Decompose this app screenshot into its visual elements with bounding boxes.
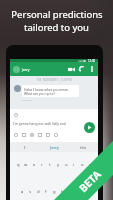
button[interactable]: Call (77, 64, 87, 74)
staticText: l (85, 189, 87, 195)
button[interactable]: i (70, 152, 78, 178)
button[interactable]: Send (84, 122, 95, 133)
staticText: I'm gonna hang out with Sally and (13, 121, 84, 125)
button[interactable]: u (62, 152, 70, 178)
button[interactable]: a (18, 178, 26, 200)
button[interactable]: Files (44, 131, 52, 139)
button[interactable]: Camera (28, 131, 36, 139)
button[interactable]: w (22, 152, 30, 178)
staticText: y (57, 162, 60, 168)
staticText: the (80, 145, 87, 150)
button[interactable]: More options (88, 65, 96, 73)
staticText: f (45, 189, 47, 195)
button[interactable]: More (52, 131, 60, 139)
staticText: Jerry (50, 145, 59, 150)
button[interactable]: f (42, 178, 50, 200)
staticText: Haha I know what you mean. (24, 87, 69, 91)
staticText: o (81, 162, 84, 168)
staticText: u (65, 162, 68, 168)
button[interactable]: the (69, 142, 98, 152)
button[interactable]: I (10, 142, 40, 152)
staticText: e (33, 162, 36, 168)
staticText: d (37, 189, 40, 195)
other: Send (87, 125, 92, 130)
staticText: TUE, NOVEMBER 1, 12:30 PM (10, 78, 98, 82)
staticText: 12:30 (88, 59, 96, 62)
staticText: tailored to you (24, 21, 89, 34)
button[interactable]: e (30, 152, 38, 178)
staticText: q (17, 162, 20, 168)
button[interactable]: p (86, 152, 94, 178)
staticText: t (49, 162, 51, 168)
button[interactable]: s (26, 178, 34, 200)
staticText: i (73, 162, 75, 168)
staticText: Jerry (22, 67, 30, 72)
button[interactable]: k (74, 178, 82, 200)
button[interactable]: Attach (12, 111, 19, 118)
staticText: s (29, 189, 32, 195)
button[interactable]: g (50, 178, 58, 200)
staticText: 12:30 PM (22, 98, 33, 101)
staticText: What are you up to? (24, 91, 55, 95)
button[interactable]: h (58, 178, 66, 200)
staticText: BETA (76, 167, 104, 195)
button[interactable]: Jerry (40, 142, 69, 152)
staticText: r (41, 162, 43, 168)
button[interactable]: d (34, 178, 42, 200)
button[interactable]: y (54, 152, 62, 178)
button[interactable]: Gallery (36, 131, 44, 139)
button[interactable]: Sticker (20, 131, 28, 139)
staticText: h (61, 189, 64, 195)
staticText: w (24, 162, 28, 168)
button[interactable]: Video call (66, 64, 76, 74)
button[interactable]: l (82, 178, 90, 200)
button[interactable]: o (78, 152, 86, 178)
button[interactable]: r (38, 152, 46, 178)
button[interactable]: Emoji (12, 131, 20, 139)
staticText: Personal predictions (11, 8, 103, 21)
button[interactable]: j (66, 178, 74, 200)
button[interactable]: t (46, 152, 54, 178)
staticText: g (53, 189, 56, 195)
staticText: I (24, 145, 26, 150)
button[interactable]: q (14, 152, 22, 178)
staticText: a (21, 189, 24, 195)
staticText: p (89, 162, 92, 168)
